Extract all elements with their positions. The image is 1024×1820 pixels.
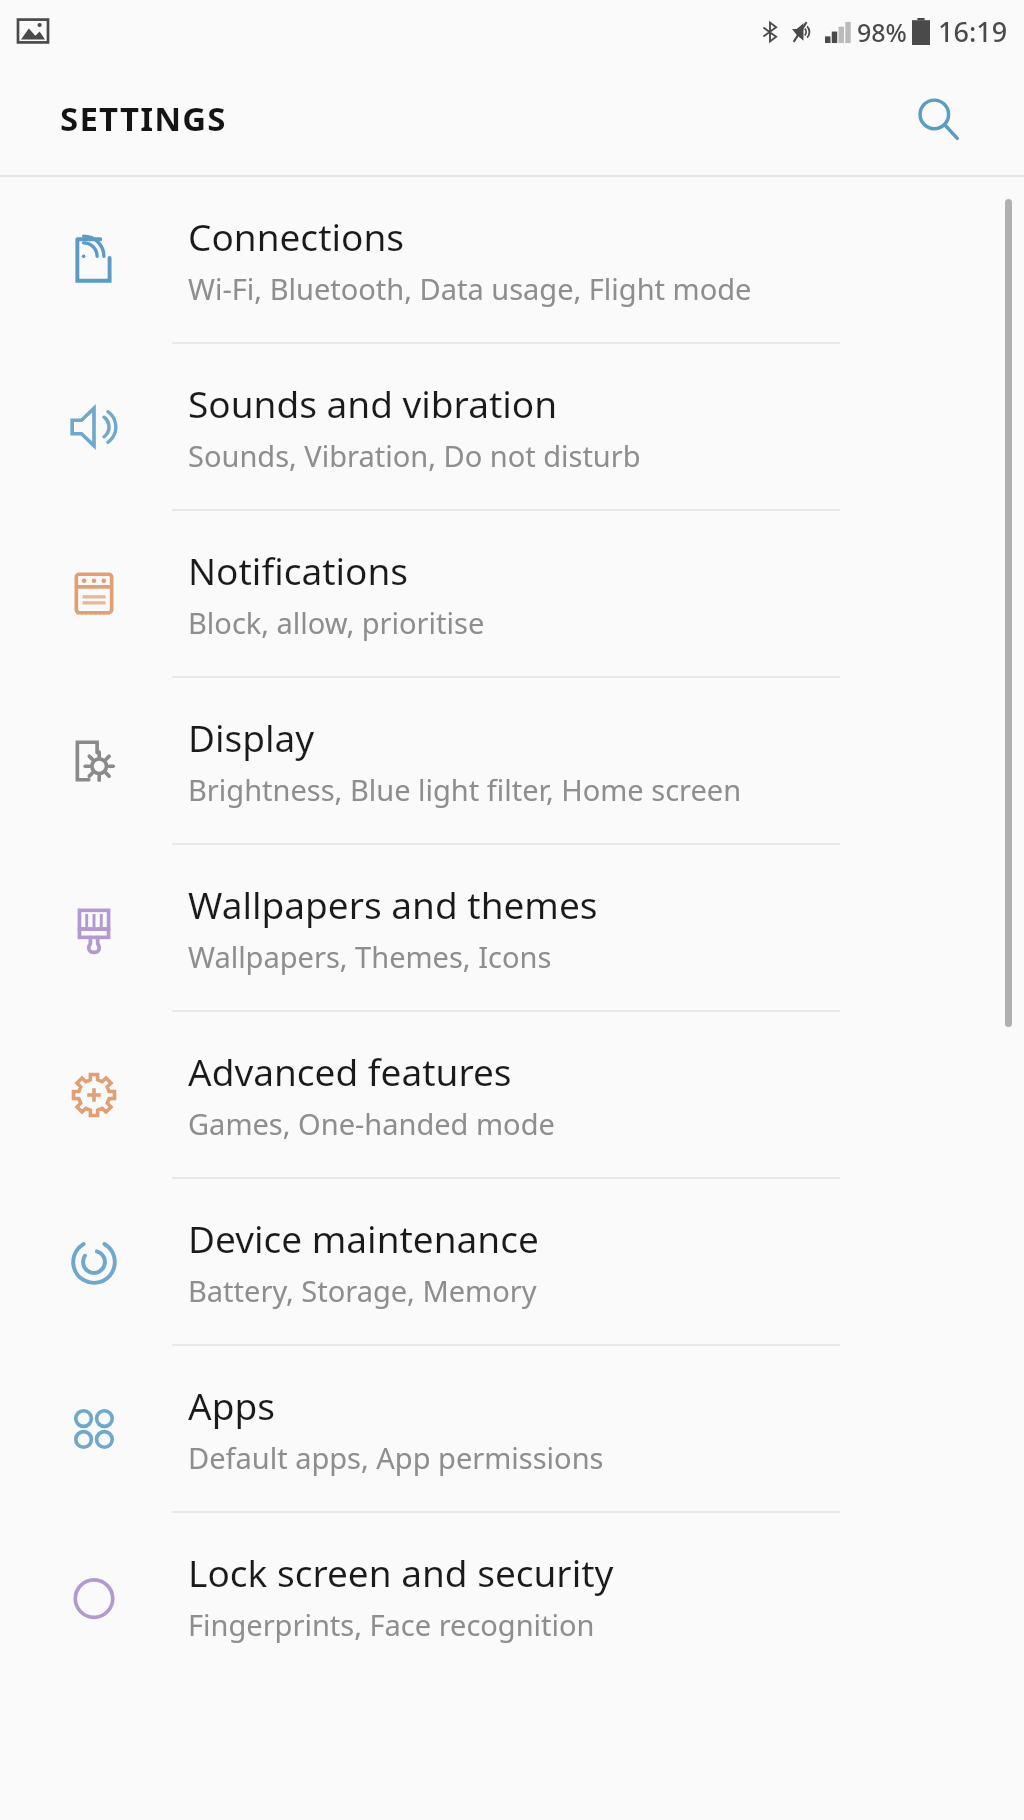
button[interactable]: Connections (0, 177, 1024, 344)
button[interactable]: Advanced features (0, 1012, 1024, 1179)
button[interactable]: Search (902, 83, 974, 155)
button[interactable]: Notifications (0, 511, 1024, 678)
staticText: Battery, Storage, Memory (188, 1271, 537, 1310)
staticText: Connections (188, 211, 405, 261)
button[interactable]: Wallpapers and themes (0, 845, 1024, 1012)
staticText: Wallpapers and themes (188, 879, 598, 929)
staticText: Sounds and vibration (188, 378, 558, 428)
button[interactable]: Sounds and vibration (0, 344, 1024, 511)
staticText: Brightness, Blue light filter, Home scre… (188, 770, 742, 809)
button[interactable]: Device maintenance (0, 1179, 1024, 1346)
staticText: Apps (188, 1380, 275, 1430)
staticText: Sounds, Vibration, Do not disturb (188, 436, 641, 475)
staticText: Block, allow, prioritise (188, 603, 485, 642)
staticText: Device maintenance (188, 1213, 539, 1263)
staticText: Notifications (188, 545, 409, 595)
staticText: Advanced features (188, 1046, 512, 1096)
staticText: 16:19 (938, 13, 1008, 50)
staticText: Default apps, App permissions (188, 1438, 604, 1477)
button[interactable]: Lock screen and security (0, 1513, 1024, 1678)
staticText: Games, One-handed mode (188, 1104, 555, 1143)
staticText: Fingerprints, Face recognition (188, 1605, 595, 1644)
staticText: 98% (857, 15, 907, 49)
staticText: Wi-Fi, Bluetooth, Data usage, Flight mod… (188, 269, 752, 308)
button[interactable]: Apps (0, 1346, 1024, 1513)
staticText: SETTINGS (60, 96, 227, 141)
staticText: Display (188, 712, 315, 762)
staticText: Wallpapers, Themes, Icons (188, 937, 552, 976)
staticText: Lock screen and security (188, 1547, 614, 1597)
button[interactable]: Display (0, 678, 1024, 845)
